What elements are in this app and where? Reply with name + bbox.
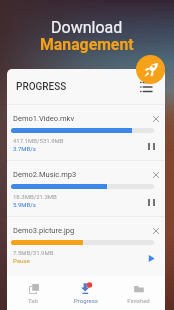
staticText: Demo1.Video.mkv [13, 114, 75, 123]
button[interactable]: Demo2.Music.mp3 [7, 161, 165, 216]
staticText: 417.1MB/531.9MB [13, 137, 64, 144]
staticText: Finished [127, 297, 150, 304]
staticText: Pause [13, 257, 30, 264]
staticText: Demo2.Music.mp3 [13, 170, 77, 179]
button[interactable]: Finished [112, 276, 165, 310]
button[interactable]: Pause [143, 138, 159, 154]
staticText: Tab [28, 297, 38, 304]
button[interactable]: Resume [143, 250, 159, 266]
button[interactable]: Cancel download [148, 167, 164, 183]
button[interactable]: Pause [143, 194, 159, 210]
staticText: PROGRESS [16, 81, 67, 93]
button[interactable]: More options [137, 78, 155, 96]
button[interactable]: Boost download [136, 55, 165, 84]
staticText: 7.5MB/31.9MB [13, 249, 54, 256]
staticText: Download [51, 18, 123, 37]
button[interactable]: Progress [59, 276, 112, 310]
button[interactable]: Tab [7, 276, 59, 310]
staticText: Demo3.picture.jpg [13, 226, 75, 235]
button[interactable]: Cancel download [148, 111, 164, 127]
staticText: 18.3MB/21.3MB [13, 193, 57, 200]
button[interactable]: Cancel download [148, 223, 164, 239]
staticText: 5.9MB/s [13, 201, 36, 208]
button[interactable]: Demo1.Video.mkv [7, 105, 165, 160]
staticText: 3.7MB/s [13, 145, 36, 152]
staticText: Management [40, 35, 134, 54]
staticText: Progress [74, 297, 98, 304]
button[interactable]: Demo3.picture.jpg [7, 217, 165, 272]
